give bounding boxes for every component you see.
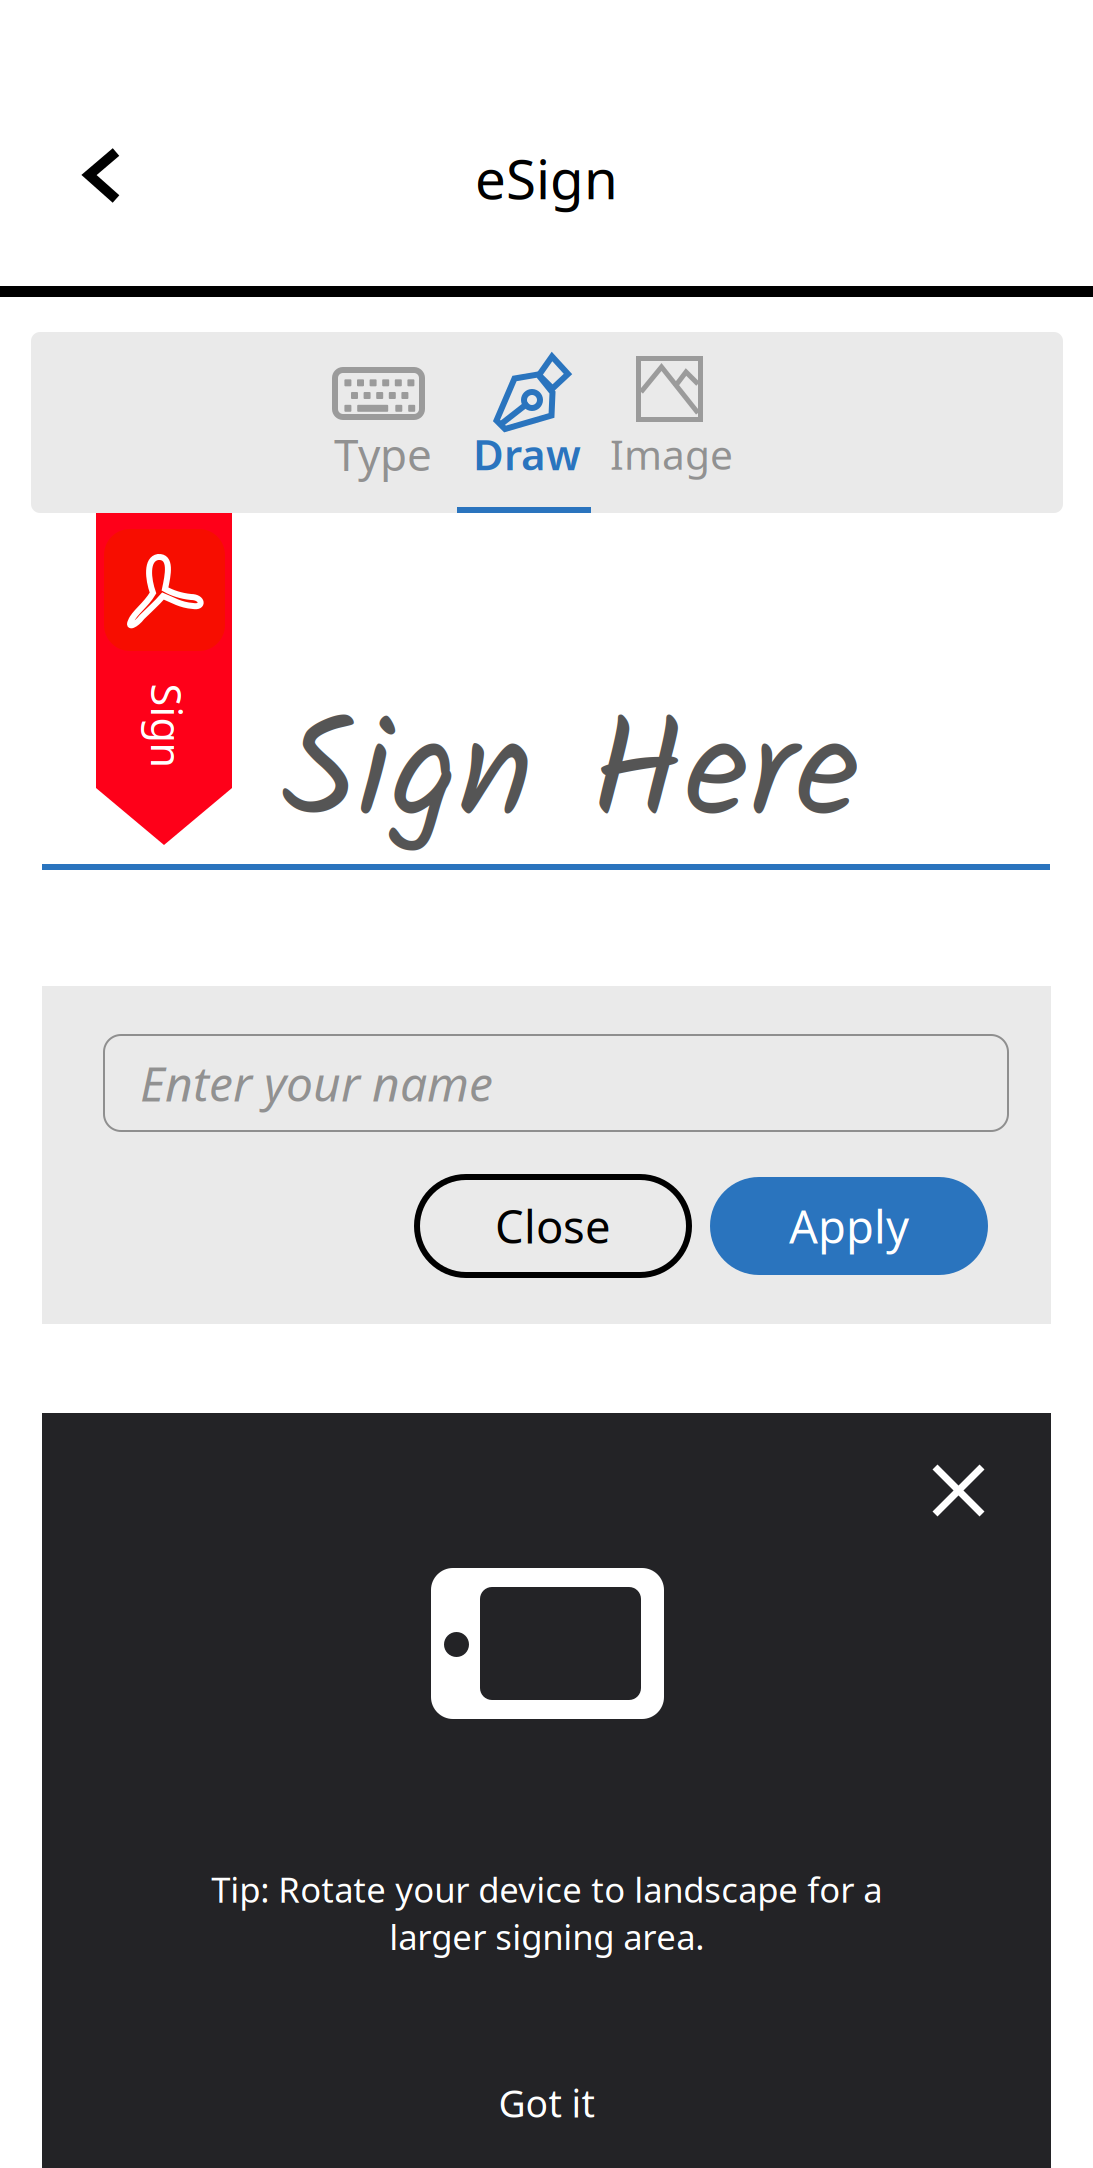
button[interactable]: Close tip: [906, 1438, 1011, 1543]
staticText: Draw: [473, 425, 581, 483]
staticText: eSign: [475, 141, 618, 215]
button[interactable]: Image: [636, 332, 786, 482]
staticText: Close: [495, 1195, 611, 1257]
button[interactable]: Type: [332, 332, 482, 482]
button[interactable]: Back: [50, 113, 156, 238]
staticText: Sign Here: [282, 665, 860, 891]
staticText: Enter your name: [140, 1050, 493, 1116]
staticText: Type: [334, 424, 432, 484]
staticText: Tip: Rotate your device to landscape for…: [211, 1866, 882, 1960]
button[interactable]: Close: [417, 1177, 689, 1275]
staticText: Image: [610, 426, 733, 482]
staticText: Sign: [124, 698, 209, 754]
staticText: Got it: [498, 2078, 594, 2128]
button[interactable]: Apply: [710, 1177, 988, 1275]
button[interactable]: Draw: [493, 332, 643, 482]
staticText: Apply: [789, 1195, 909, 1257]
button[interactable]: Got it: [42, 2068, 1051, 2138]
